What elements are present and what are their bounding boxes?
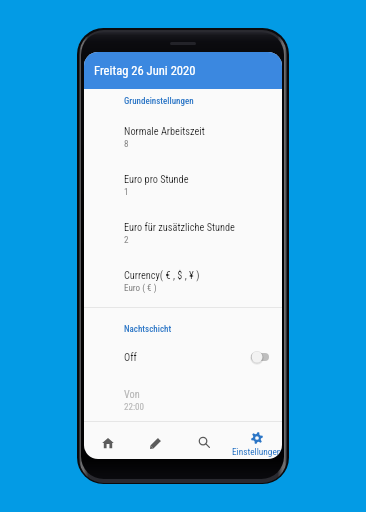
staticText: 2 xyxy=(124,235,129,246)
button[interactable]: Grundeinstellungen xyxy=(124,96,194,107)
button[interactable]: Currency( € , $ , ¥ ) xyxy=(84,263,282,300)
staticText: Euro ( € ) xyxy=(124,283,157,294)
button[interactable]: Einstellungen xyxy=(230,422,281,459)
button[interactable]: Off xyxy=(84,344,282,371)
button[interactable]: Normale Arbeitszeit xyxy=(84,119,282,156)
staticText: Freitag 26 Juni 2020 xyxy=(94,63,196,78)
staticText: Einstellungen xyxy=(232,446,282,457)
button[interactable]: Nachtschicht xyxy=(124,324,172,335)
staticText: Euro für zusätzliche Stunde xyxy=(124,221,235,233)
staticText: Von xyxy=(124,388,140,400)
staticText: 22:00 xyxy=(124,402,145,413)
staticText: Normale Arbeitszeit xyxy=(124,125,205,137)
staticText: Off xyxy=(124,351,137,363)
button[interactable]: Edit xyxy=(132,422,180,459)
button[interactable]: Euro pro Stunde xyxy=(84,167,282,204)
staticText: 8 xyxy=(124,139,129,150)
staticText: Euro pro Stunde xyxy=(124,173,189,185)
staticText: 1 xyxy=(124,187,129,198)
button[interactable]: Von xyxy=(84,382,282,419)
button[interactable]: Home xyxy=(84,422,132,459)
staticText: Currency( € , $ , ¥ ) xyxy=(124,269,200,281)
button[interactable]: Euro für zusätzliche Stunde xyxy=(84,215,282,252)
button[interactable]: Search xyxy=(180,422,228,459)
